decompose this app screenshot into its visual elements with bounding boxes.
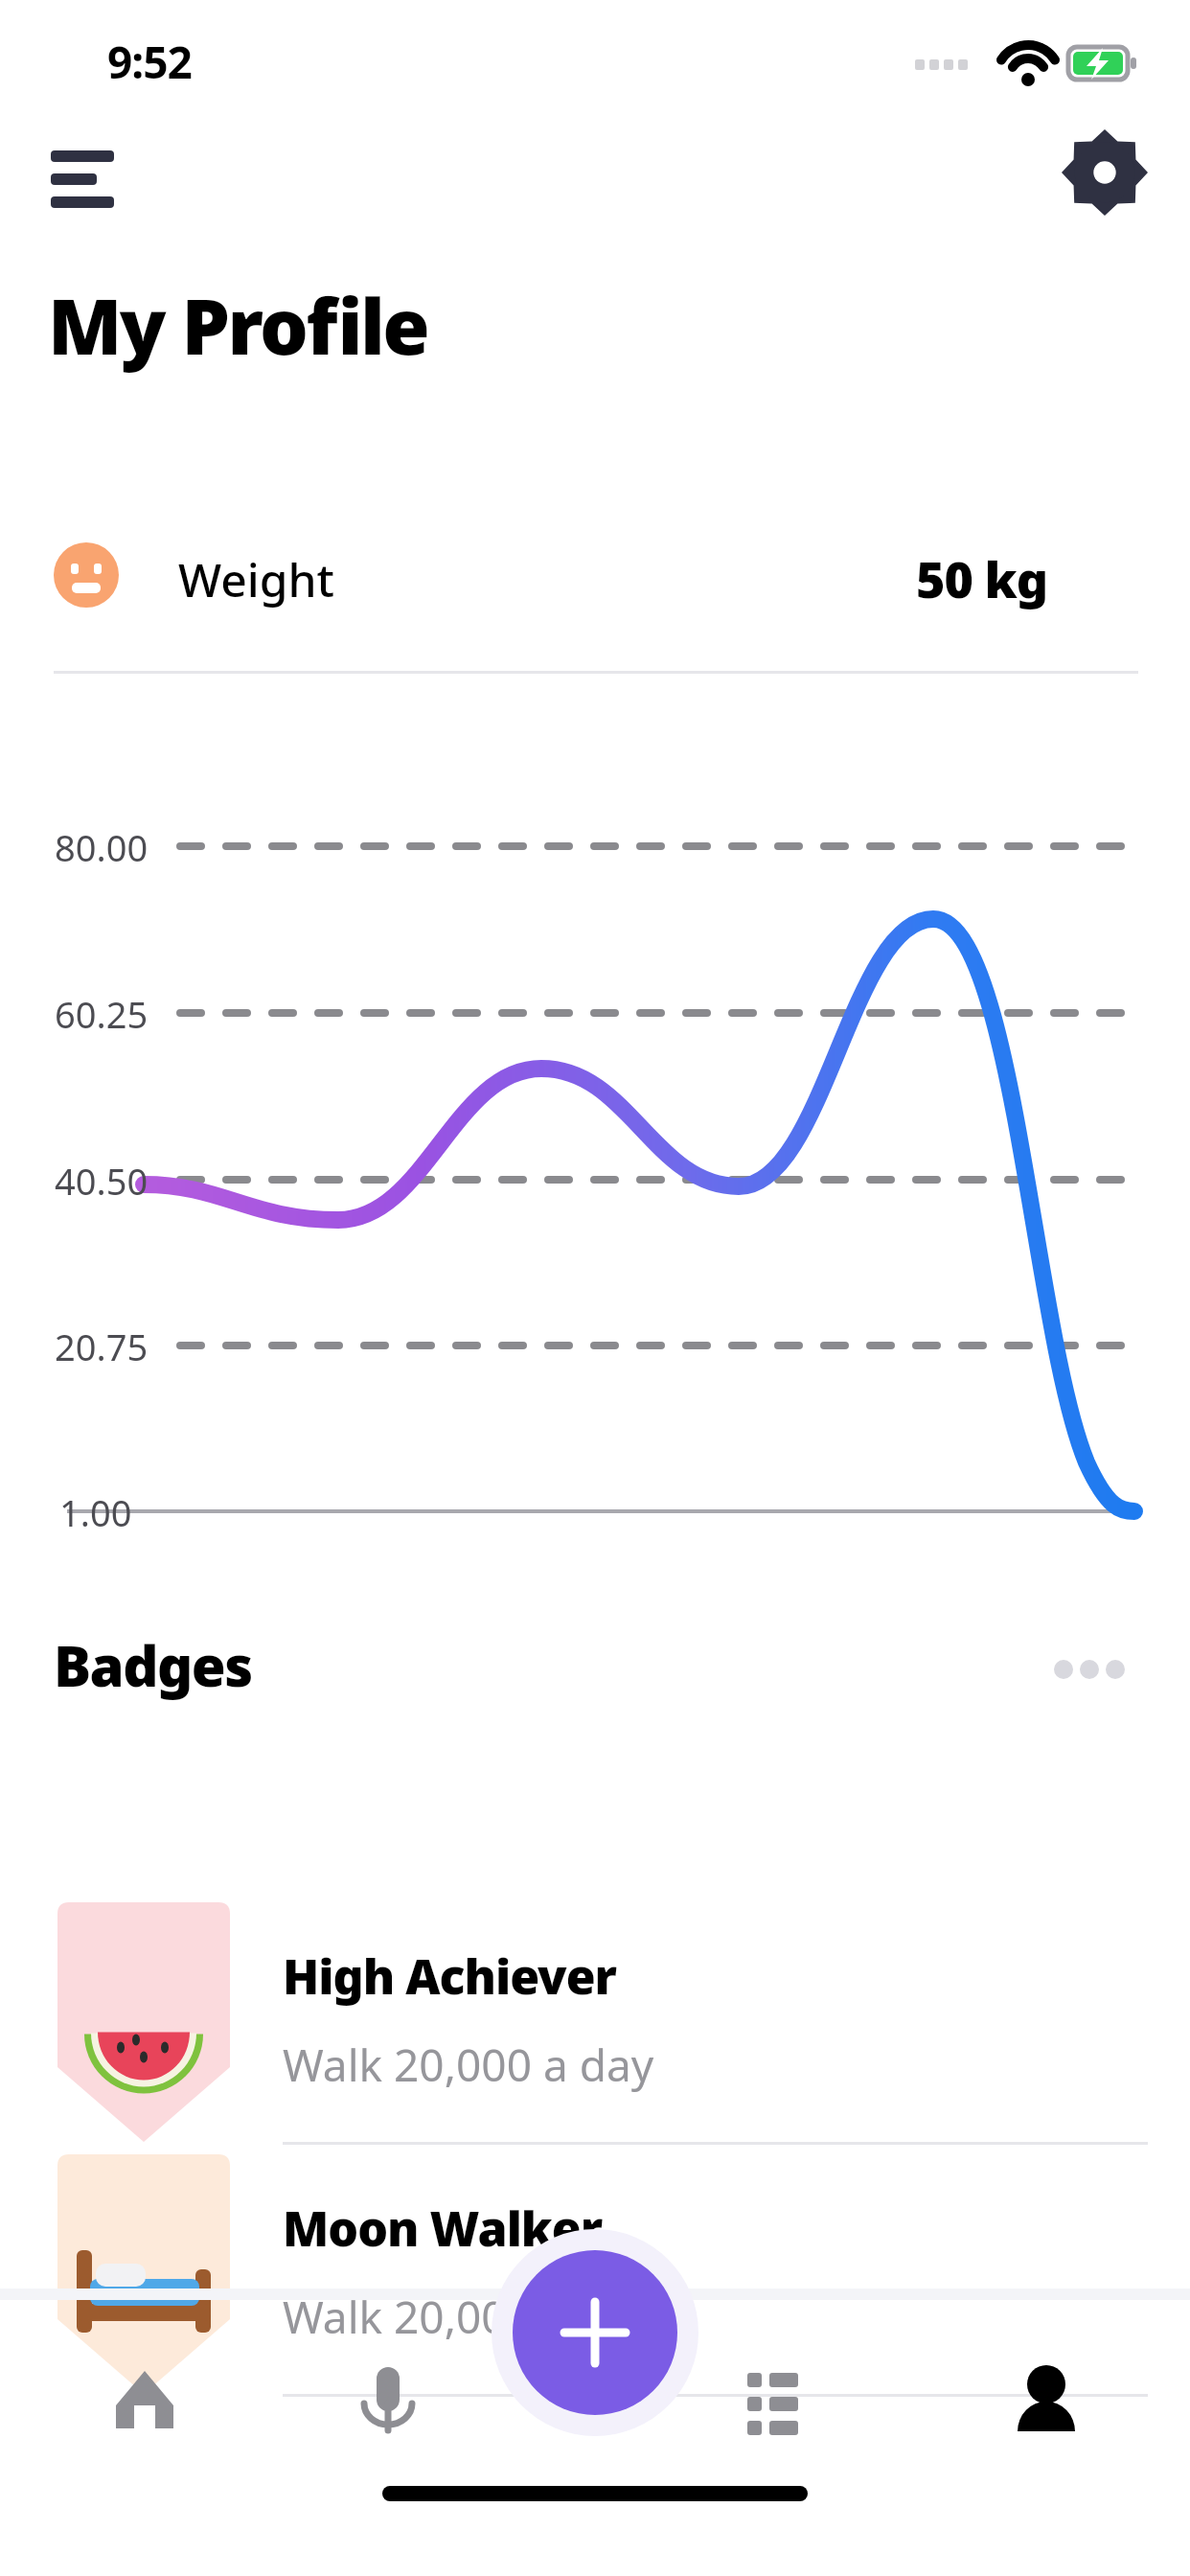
staticText: 40.50 <box>55 1156 149 1206</box>
button[interactable]: Moon Walker <box>48 2154 1148 2402</box>
staticText: 20.75 <box>55 1322 149 1371</box>
button[interactable]: Menu <box>14 123 125 233</box>
button[interactable]: Settings <box>1049 117 1159 227</box>
staticText: 9:52 <box>107 32 192 92</box>
button[interactable]: Weight <box>46 525 1148 625</box>
button[interactable]: Home <box>68 2323 221 2476</box>
staticText: My Profile <box>48 272 428 377</box>
button[interactable]: Profile <box>970 2323 1123 2476</box>
button[interactable]: List <box>696 2323 849 2476</box>
staticText: 60.25 <box>55 989 149 1039</box>
button[interactable]: Voice <box>311 2323 465 2476</box>
button[interactable]: Add <box>513 2250 677 2415</box>
staticText: Weight <box>178 548 334 610</box>
staticText: High Achiever <box>283 1943 616 2009</box>
staticText: Walk 20,000 a day <box>283 2287 654 2347</box>
staticText: 80.00 <box>55 822 149 872</box>
button[interactable]: More badges <box>1040 1634 1150 1706</box>
staticText: Walk 20,000 a day <box>283 2035 654 2095</box>
button[interactable]: High Achiever <box>48 1902 1148 2150</box>
staticText: Badges <box>54 1627 252 1703</box>
staticText: 50 kg <box>916 544 1048 612</box>
staticText: Moon Walker <box>283 2196 603 2261</box>
staticText: 1.00 <box>59 1487 132 1537</box>
